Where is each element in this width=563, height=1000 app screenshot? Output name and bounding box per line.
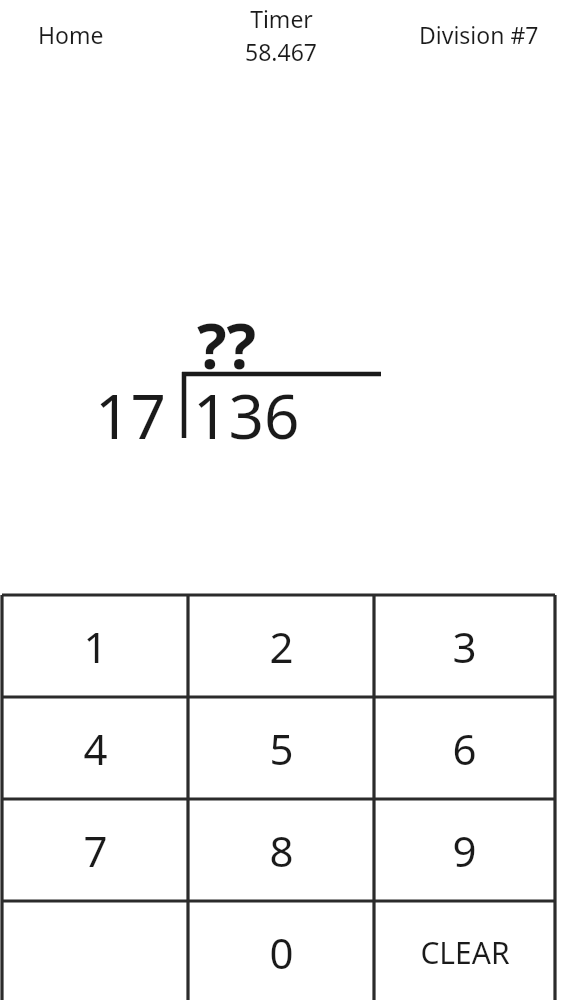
staticText: ?? [197, 303, 257, 387]
staticText: CLEAR [420, 932, 510, 973]
button[interactable]: 0 [188, 901, 374, 1000]
staticText: 0 [269, 924, 294, 981]
staticText: 7 [83, 822, 108, 879]
button[interactable]: Blank key [2, 901, 188, 1000]
button[interactable]: Division #7 [404, 10, 554, 54]
staticText: 4 [83, 720, 108, 777]
button[interactable]: 5 [188, 697, 374, 799]
button[interactable]: 4 [2, 697, 188, 799]
button[interactable]: 9 [374, 799, 555, 901]
staticText: 8 [269, 822, 294, 879]
button[interactable]: Home [18, 10, 124, 54]
button[interactable]: 1 [2, 595, 188, 697]
staticText: Home [38, 19, 104, 50]
button[interactable]: CLEAR [374, 901, 555, 1000]
staticText: 1 [83, 618, 108, 675]
staticText: Timer [250, 3, 313, 34]
button[interactable]: 7 [2, 799, 188, 901]
staticText: Division #7 [419, 19, 539, 50]
staticText: 5 [269, 720, 294, 777]
button[interactable] [2, 901, 188, 1000]
button[interactable]: 8 [188, 799, 374, 901]
staticText: 136 [193, 373, 300, 457]
staticText: 58.467 [245, 36, 317, 63]
staticText: 17 [95, 373, 166, 457]
button[interactable]: Timer [206, 0, 356, 58]
button[interactable]: 3 [374, 595, 555, 697]
button[interactable]: 2 [188, 595, 374, 697]
staticText: 2 [269, 618, 294, 675]
button[interactable]: 6 [374, 697, 555, 799]
staticText: 9 [452, 822, 477, 879]
staticText: 6 [452, 720, 477, 777]
staticText: 3 [452, 618, 477, 675]
